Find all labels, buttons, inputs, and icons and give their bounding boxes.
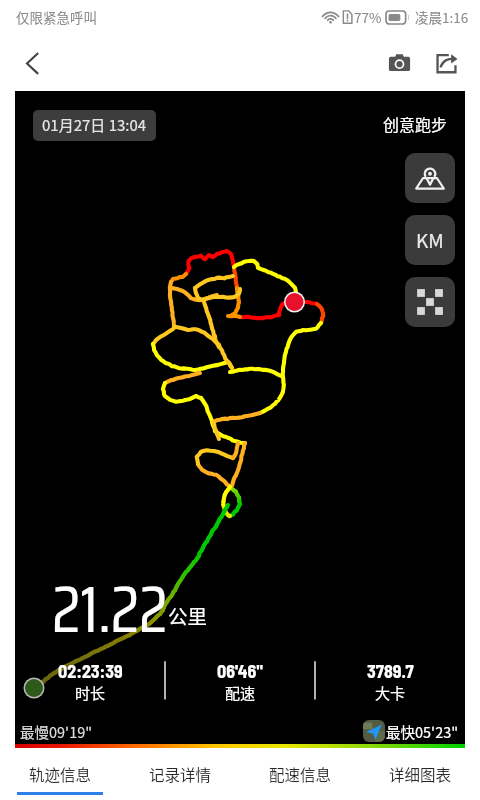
staticText: 01月27日 13:04 <box>42 114 147 136</box>
staticText: 公里 <box>168 601 208 629</box>
button[interactable]: Camera <box>377 41 421 85</box>
staticText: 创意跑步 <box>383 112 448 135</box>
button[interactable]: Share <box>424 41 468 85</box>
button[interactable]: 轨迹信息 <box>0 748 120 800</box>
staticText: 02:23:39 <box>58 660 123 682</box>
staticText: 配速信息 <box>269 763 332 785</box>
staticText: 最快05'23" <box>386 721 459 742</box>
button[interactable]: 详细图表 <box>360 748 480 800</box>
staticText: 77% <box>354 7 382 27</box>
button[interactable]: 记录详情 <box>120 748 240 800</box>
button[interactable]: Map layers <box>405 153 455 203</box>
staticText: 21.22 <box>52 558 168 660</box>
staticText: 轨迹信息 <box>29 763 92 785</box>
button[interactable]: Back <box>10 41 54 85</box>
staticText: 配速 <box>225 682 256 704</box>
button[interactable]: KM <box>405 215 455 265</box>
staticText: 详细图表 <box>389 763 452 785</box>
staticText: 仅限紧急呼叫 <box>16 7 97 27</box>
staticText: 记录详情 <box>149 763 212 785</box>
staticText: KM <box>416 226 444 254</box>
staticText: 最慢09'19" <box>20 721 93 742</box>
staticText: 06'46" <box>217 660 263 682</box>
button[interactable]: 配速信息 <box>240 748 360 800</box>
staticText: 凌晨1:16 <box>415 7 469 27</box>
staticText: 时长 <box>75 682 106 704</box>
button[interactable]: Fullscreen <box>405 277 455 327</box>
staticText: 3789.7 <box>367 660 414 682</box>
staticText: 大卡 <box>375 682 406 704</box>
